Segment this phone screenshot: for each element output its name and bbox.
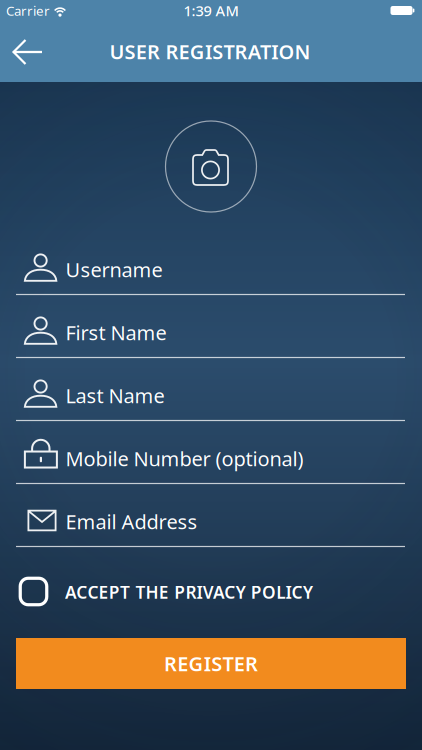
- staticText: Last Name: [65, 382, 164, 409]
- button[interactable]: Mobile Number (optional): [16, 425, 406, 488]
- button[interactable]: Last Name: [16, 362, 406, 425]
- button[interactable]: First Name: [16, 299, 406, 362]
- staticText: REGISTER: [164, 650, 258, 677]
- staticText: Username: [65, 256, 162, 283]
- button[interactable]: [6, 34, 50, 70]
- staticText: 1:39 AM: [183, 1, 238, 20]
- button[interactable]: ACCEPT THE PRIVACY POLICY: [16, 574, 406, 609]
- button[interactable]: Username: [16, 236, 406, 299]
- staticText: First Name: [65, 319, 166, 346]
- staticText: ACCEPT THE PRIVACY POLICY: [65, 580, 313, 603]
- staticText: Email Address: [65, 508, 197, 535]
- staticText: Mobile Number (optional): [65, 445, 303, 472]
- staticText: Carrier: [6, 2, 50, 19]
- button[interactable]: REGISTER: [16, 638, 406, 689]
- staticText: USER REGISTRATION: [109, 38, 311, 65]
- button[interactable]: Email Address: [16, 488, 406, 551]
